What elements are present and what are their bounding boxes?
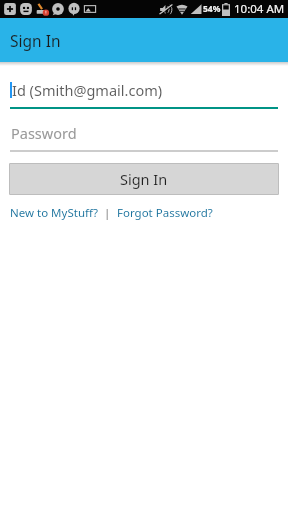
staticText: Password [11, 123, 77, 143]
button[interactable]: Id (Smith@gmail.com) [10, 80, 278, 109]
staticText: New to MyStuff? [10, 205, 98, 221]
staticText: Id (Smith@gmail.com) [12, 80, 163, 100]
button[interactable]: Sign In [9, 163, 279, 195]
button[interactable]: Forgot Password? [117, 205, 213, 221]
staticText: Sign In [10, 30, 61, 51]
staticText: 54% [203, 3, 221, 15]
button[interactable]: Password [10, 123, 278, 152]
staticText: Sign In [120, 169, 168, 189]
button[interactable]: New to MyStuff? [10, 205, 98, 221]
staticText: 10:04 AM [234, 1, 285, 17]
staticText: Forgot Password? [117, 205, 213, 221]
staticText: | [104, 205, 111, 221]
